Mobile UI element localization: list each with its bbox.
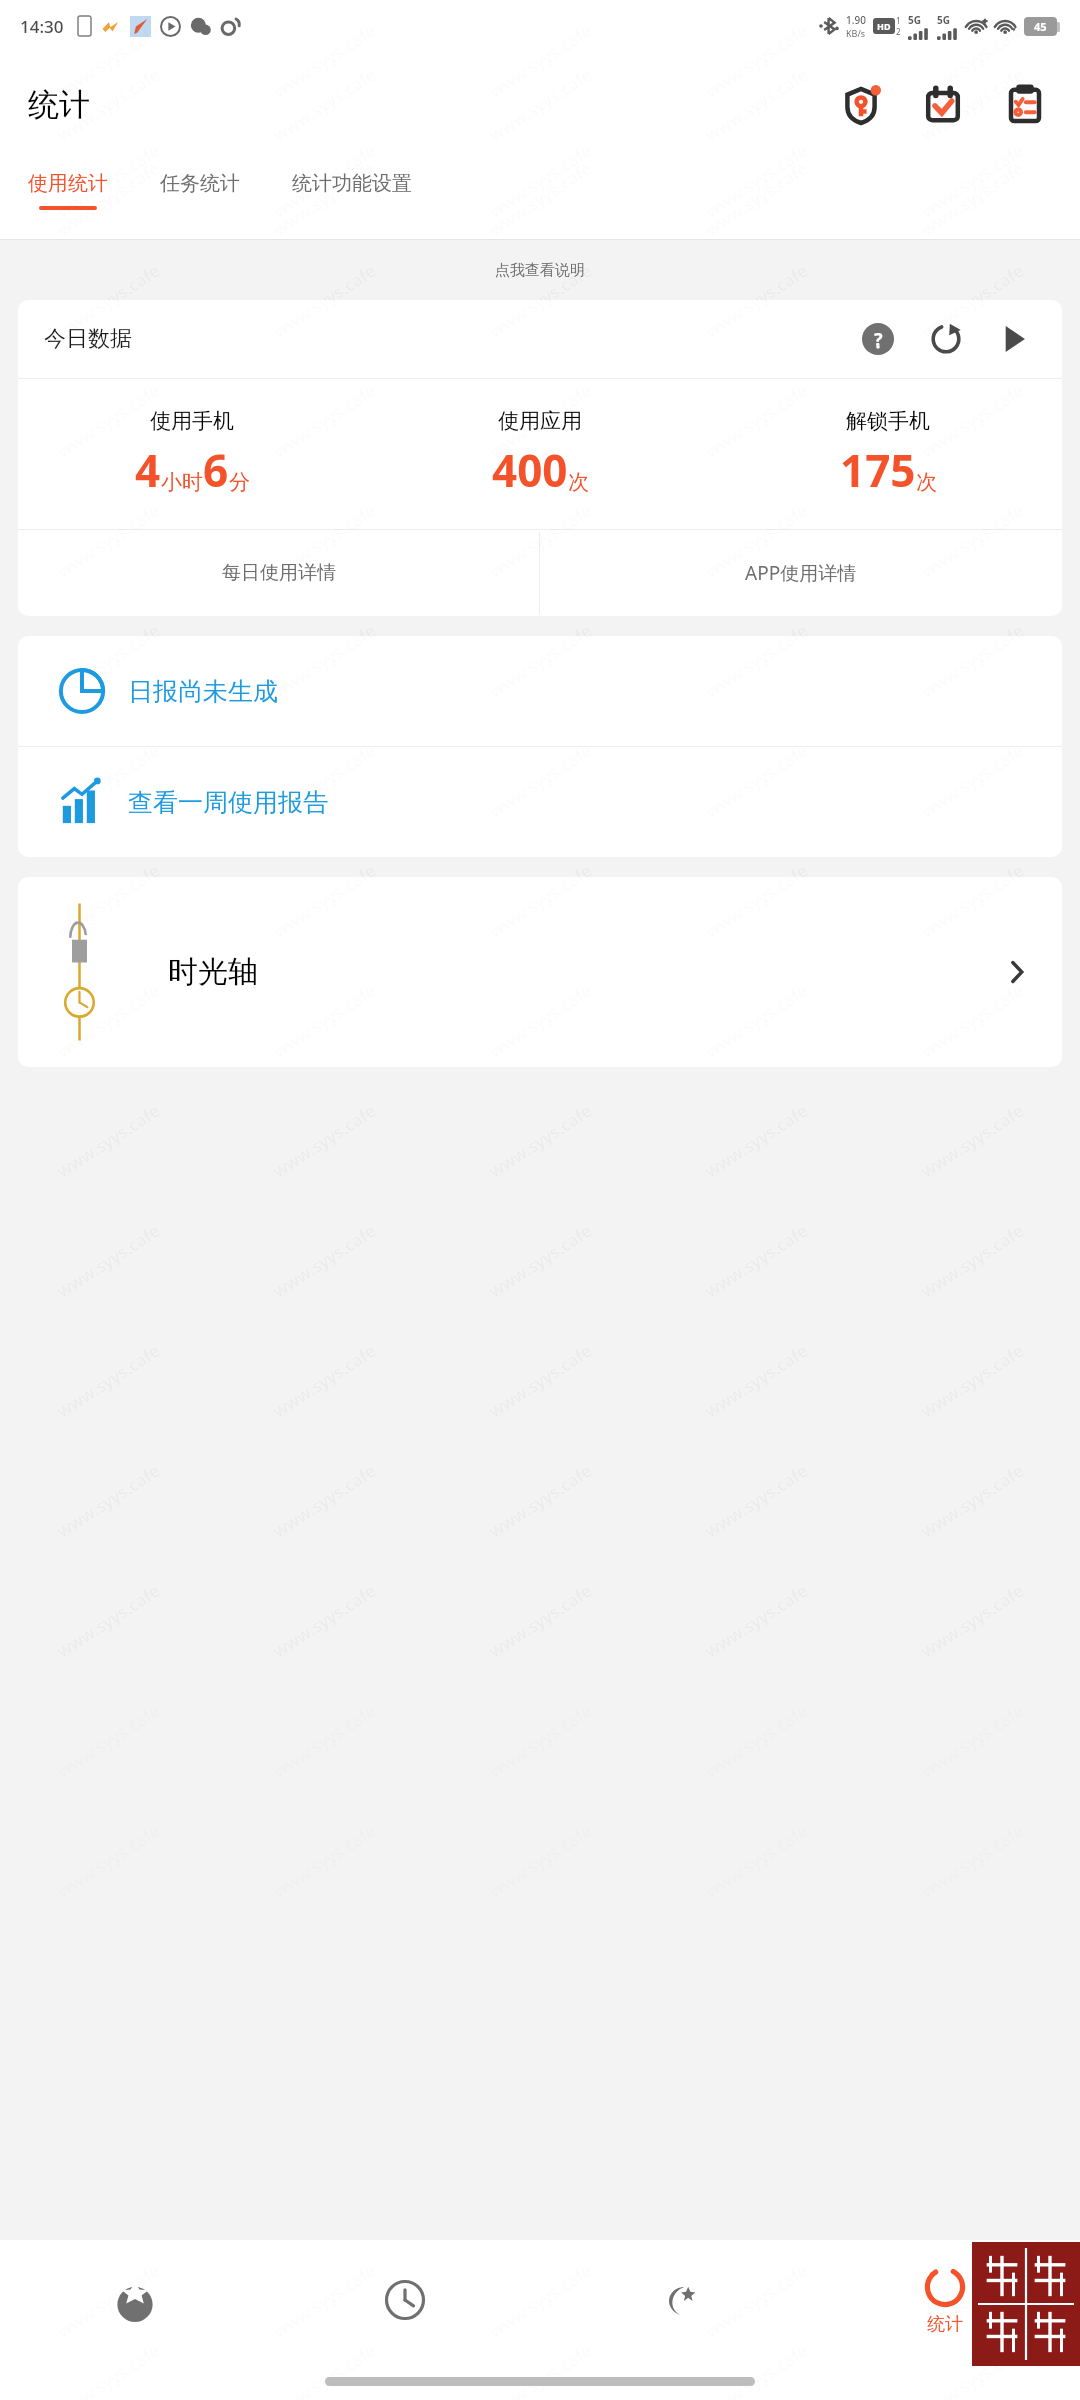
staticText: www.syys.cafe <box>52 978 165 1062</box>
button[interactable]: 使用统计 <box>28 157 108 210</box>
staticText: HD <box>877 20 891 32</box>
button[interactable]: 任务统计 <box>160 157 240 206</box>
staticText: www.syys.cafe <box>52 2258 165 2342</box>
staticText: 查看一周使用报告 <box>128 787 328 818</box>
staticText: www.syys.cafe <box>700 858 813 942</box>
staticText: www.syys.cafe <box>268 858 381 942</box>
button[interactable]: 今日数据 <box>18 300 1062 378</box>
staticText: 5G <box>937 13 950 27</box>
staticText: www.syys.cafe <box>52 18 165 102</box>
staticText: www.syys.cafe <box>52 618 165 702</box>
staticText: www.syys.cafe <box>52 738 165 822</box>
staticText: www.syys.cafe <box>268 2338 381 2400</box>
staticText: www.syys.cafe <box>484 858 597 942</box>
staticText: www.syys.cafe <box>916 2258 1029 2342</box>
staticText: 1.90 <box>846 13 866 27</box>
button[interactable]: 统计功能设置 <box>292 157 412 206</box>
button[interactable]: 日历打卡 <box>912 74 974 136</box>
button[interactable]: 任务清单 <box>994 74 1056 136</box>
staticText: www.syys.cafe <box>916 858 1029 942</box>
button[interactable]: 统计 <box>810 2240 1080 2360</box>
staticText: www.syys.cafe <box>268 738 381 822</box>
button[interactable]: 查看一周使用报告 <box>18 747 1062 857</box>
button[interactable]: 点我查看说明 <box>495 261 585 280</box>
staticText: www.syys.cafe <box>484 858 597 942</box>
staticText: KB/s <box>846 27 866 39</box>
staticText: www.syys.cafe <box>52 618 165 702</box>
button[interactable]: 时光轴 <box>18 877 1062 1067</box>
staticText: 6 <box>203 440 229 500</box>
staticText: www.syys.cafe <box>700 258 813 342</box>
staticText: www.syys.cafe <box>484 618 597 702</box>
staticText: 任务统计 <box>160 171 240 196</box>
button[interactable]: 使用应用 <box>366 408 714 500</box>
staticText: 使用应用 <box>498 408 582 434</box>
button[interactable]: 日报尚未生成 <box>18 636 1062 746</box>
staticText: www.syys.cafe <box>484 378 597 462</box>
staticText: www.syys.cafe <box>268 618 381 702</box>
staticText: 14:30 <box>20 15 64 38</box>
staticText: 小时 <box>161 469 203 495</box>
staticText: www.syys.cafe <box>268 138 381 222</box>
staticText: www.syys.cafe <box>52 62 165 146</box>
staticText: www.syys.cafe <box>268 258 381 342</box>
button[interactable]: 睡眠 <box>540 2240 810 2360</box>
staticText: www.syys.cafe <box>52 978 165 1062</box>
button[interactable]: 每日使用详情 <box>18 530 539 616</box>
button[interactable]: 帮助 <box>856 317 900 361</box>
button[interactable]: 开始 <box>992 317 1036 361</box>
staticText: www.syys.cafe <box>484 618 597 702</box>
button[interactable]: 解锁手机 <box>714 408 1062 500</box>
staticText: www.syys.cafe <box>700 618 813 702</box>
staticText: www.syys.cafe <box>52 258 165 342</box>
staticText: www.syys.cafe <box>700 498 813 582</box>
staticText: APP使用详情 <box>745 560 857 586</box>
button[interactable]: 使用手机 <box>18 408 366 500</box>
button[interactable]: 番茄钟 <box>0 2240 270 2360</box>
staticText: www.syys.cafe <box>484 258 597 342</box>
button[interactable]: 时钟 <box>270 2240 540 2360</box>
staticText: www.syys.cafe <box>916 378 1029 462</box>
button[interactable]: 刷新 <box>924 317 968 361</box>
button[interactable]: APP使用详情 <box>540 530 1062 616</box>
staticText: 每日使用详情 <box>222 561 336 585</box>
staticText: www.syys.cafe <box>916 618 1029 702</box>
button[interactable]: 安全 <box>830 74 892 136</box>
